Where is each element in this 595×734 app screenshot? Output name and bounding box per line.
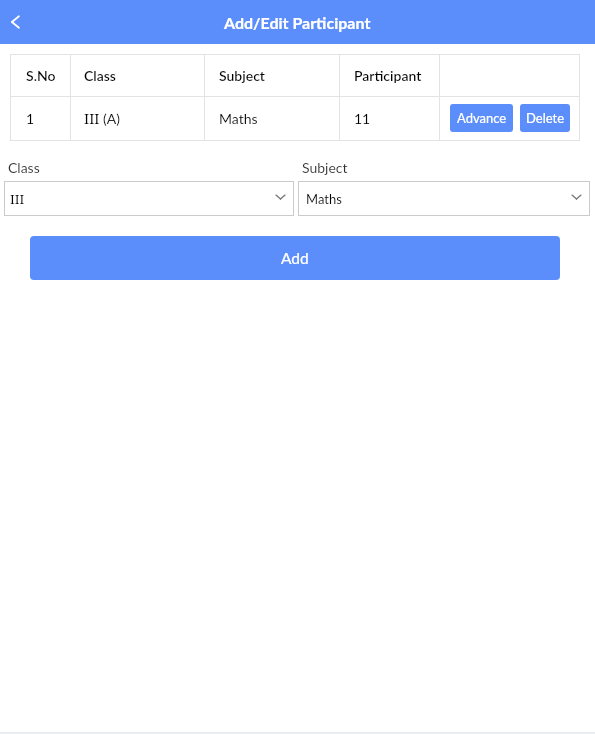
staticText: Add — [281, 249, 309, 268]
staticText: S.No — [26, 67, 56, 84]
staticText: III (A) — [84, 109, 120, 128]
staticText: Add/Edit Participant — [224, 13, 371, 32]
button[interactable]: Advance — [450, 104, 513, 132]
button[interactable]: Delete — [520, 104, 570, 132]
staticText: Maths — [306, 191, 342, 207]
staticText: Delete — [526, 110, 565, 126]
staticText: Class — [8, 159, 40, 176]
staticText: III — [10, 190, 25, 208]
button[interactable]: Add — [30, 236, 560, 280]
staticText: Participant — [354, 67, 422, 84]
staticText: 1 — [26, 110, 35, 127]
staticText: Advance — [457, 110, 507, 126]
staticText: Class — [84, 67, 116, 84]
button[interactable]: Back — [0, 4, 35, 40]
button[interactable]: III — [4, 181, 294, 216]
staticText: Maths — [219, 110, 258, 127]
staticText: 11 — [354, 110, 371, 127]
staticText: Subject — [302, 159, 348, 176]
staticText: Subject — [219, 67, 265, 84]
button[interactable]: Maths — [298, 181, 590, 216]
